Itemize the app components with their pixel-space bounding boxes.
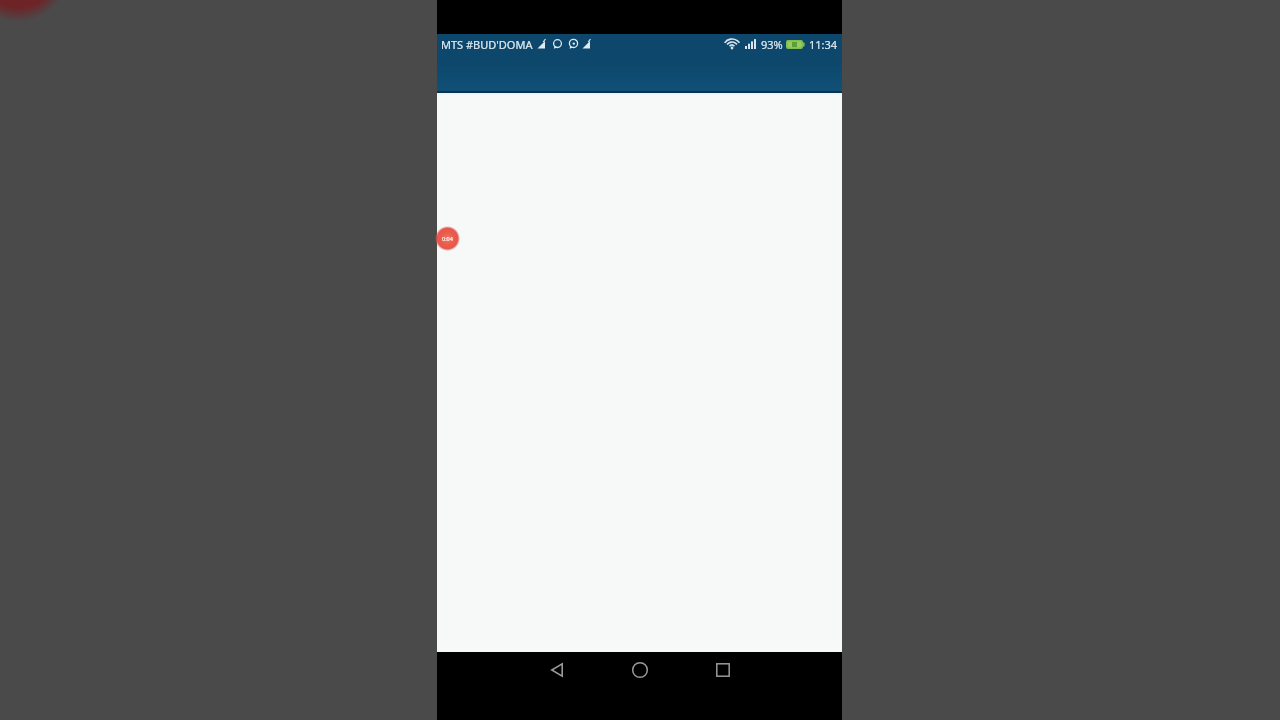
staticText: 0:04 <box>442 235 453 242</box>
staticText: 11:34 <box>809 37 838 52</box>
staticText: 93% <box>761 37 783 52</box>
button[interactable]: 0:04 <box>435 226 460 251</box>
button[interactable] <box>598 661 681 679</box>
button[interactable] <box>681 661 764 679</box>
button[interactable] <box>515 661 598 679</box>
staticText: MTS #BUD'DOMA <box>441 37 533 52</box>
